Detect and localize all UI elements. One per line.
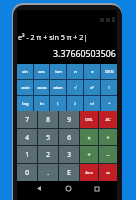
staticText: 6 bbox=[67, 133, 71, 142]
button[interactable]: 4 bbox=[17, 129, 37, 145]
button[interactable]: tan bbox=[50, 64, 66, 79]
button[interactable]: π bbox=[67, 64, 83, 79]
button[interactable]: xʸ bbox=[84, 80, 100, 95]
button[interactable]: Home bbox=[58, 181, 78, 196]
button[interactable]: + bbox=[80, 146, 98, 163]
staticText: 1 bbox=[25, 150, 29, 159]
button[interactable]: asin bbox=[17, 80, 33, 95]
button[interactable]: × bbox=[80, 129, 98, 145]
staticText: = bbox=[106, 168, 110, 177]
button[interactable]: cos bbox=[34, 64, 49, 79]
staticText: acos bbox=[37, 85, 47, 91]
button[interactable]: ( bbox=[50, 96, 66, 111]
button[interactable]: 2 bbox=[38, 146, 58, 163]
button[interactable]: n! bbox=[84, 96, 100, 111]
staticText: ^ bbox=[108, 101, 111, 107]
button[interactable]: 7 bbox=[17, 111, 37, 128]
staticText: DEG bbox=[105, 69, 114, 75]
button[interactable]: 1 bbox=[17, 146, 37, 163]
button[interactable]: Recents bbox=[87, 181, 107, 196]
staticText: e³ - 2 π + sin 5 π + 2| bbox=[18, 32, 88, 42]
staticText: log bbox=[22, 101, 29, 107]
staticText: ( bbox=[57, 101, 59, 107]
staticText: 3.37660503506 bbox=[53, 48, 116, 60]
staticText: 9 bbox=[67, 115, 71, 124]
button[interactable]: E bbox=[59, 164, 79, 181]
button[interactable]: 5 bbox=[38, 129, 58, 145]
staticText: ln bbox=[40, 101, 44, 107]
button[interactable]: . bbox=[38, 164, 58, 181]
staticText: atan bbox=[53, 85, 63, 91]
button[interactable]: 9 bbox=[59, 111, 79, 128]
button[interactable]: Ans bbox=[80, 164, 98, 181]
staticText: ÷ bbox=[106, 134, 110, 141]
button[interactable]: 3 bbox=[59, 146, 79, 163]
staticText: − bbox=[106, 151, 110, 158]
button[interactable]: − bbox=[99, 146, 117, 163]
staticText: √ bbox=[74, 85, 77, 90]
staticText: n! bbox=[90, 101, 94, 107]
staticText: tan bbox=[55, 69, 62, 75]
staticText: π bbox=[74, 69, 77, 75]
staticText: . bbox=[47, 168, 49, 177]
staticText: e bbox=[91, 69, 94, 75]
button[interactable]: ^ bbox=[101, 96, 117, 111]
button[interactable]: e bbox=[84, 64, 100, 79]
staticText: 4 bbox=[25, 133, 29, 142]
staticText: 2 bbox=[46, 150, 50, 159]
button[interactable]: ln bbox=[34, 96, 49, 111]
staticText: ) bbox=[74, 101, 76, 107]
staticText: 5 bbox=[46, 133, 50, 142]
staticText: 3 bbox=[67, 150, 71, 159]
button[interactable]: 0 bbox=[17, 164, 37, 181]
staticText: DEL bbox=[85, 117, 93, 123]
button[interactable]: DEL bbox=[80, 111, 98, 128]
staticText: + bbox=[87, 151, 91, 158]
staticText: E bbox=[67, 168, 71, 177]
staticText: 0 bbox=[25, 168, 29, 177]
button[interactable]: 8 bbox=[38, 111, 58, 128]
button[interactable]: ÷ bbox=[99, 129, 117, 145]
button[interactable]: ! bbox=[101, 80, 117, 95]
button[interactable]: √ bbox=[67, 80, 83, 95]
staticText: 7 bbox=[25, 115, 29, 124]
staticText: cos bbox=[38, 69, 45, 75]
button[interactable]: ) bbox=[67, 96, 83, 111]
staticText: sin bbox=[22, 69, 28, 75]
staticText: Ans bbox=[85, 170, 93, 176]
staticText: 8 bbox=[46, 115, 50, 124]
button[interactable]: AC bbox=[99, 111, 117, 128]
staticText: asin bbox=[21, 85, 30, 91]
staticText: × bbox=[87, 134, 91, 141]
button[interactable]: atan bbox=[50, 80, 66, 95]
staticText: xʸ bbox=[90, 85, 94, 91]
button[interactable]: log bbox=[17, 96, 33, 111]
button[interactable]: DEG bbox=[101, 64, 117, 79]
staticText: AC bbox=[105, 117, 111, 123]
button[interactable]: sin bbox=[17, 64, 33, 79]
button[interactable]: 6 bbox=[59, 129, 79, 145]
button[interactable]: = bbox=[99, 164, 117, 181]
staticText: ! bbox=[108, 85, 110, 91]
button[interactable]: acos bbox=[34, 80, 49, 95]
button[interactable]: Back bbox=[29, 181, 49, 196]
